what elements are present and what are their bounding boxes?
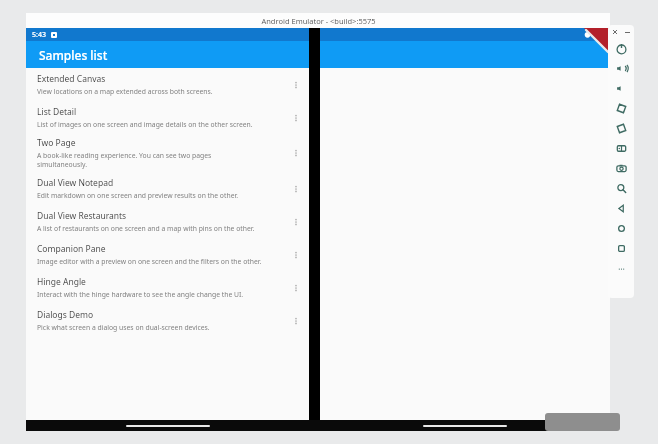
button[interactable]: More options for Two Page xyxy=(287,144,305,162)
button[interactable]: Dual View Notepad xyxy=(26,172,309,205)
staticText: Hinge Angle xyxy=(37,276,86,288)
staticText: A book-like reading experience. You can … xyxy=(37,151,212,169)
staticText: Dialogs Demo xyxy=(37,309,94,321)
staticText: Image editor with a preview on one scree… xyxy=(37,257,262,266)
staticText: Extended Canvas xyxy=(37,73,106,85)
button[interactable]: Fold device xyxy=(608,138,634,158)
button[interactable]: More options for Companion Pane xyxy=(287,246,305,264)
button[interactable]: Camera xyxy=(608,158,634,178)
button[interactable]: Close xyxy=(611,28,619,36)
staticText: List of images on one screen and image d… xyxy=(37,120,253,129)
button[interactable]: More options for Dialogs Demo xyxy=(287,312,305,330)
staticText: Companion Pane xyxy=(37,243,106,255)
button[interactable]: More options for Dual View Restaurants xyxy=(287,213,305,231)
button[interactable]: More options for Dual View Notepad xyxy=(287,180,305,198)
button[interactable]: Back xyxy=(608,198,634,218)
staticText: Pick what screen a dialog uses on dual-s… xyxy=(37,323,210,332)
staticText: Dual View Restaurants xyxy=(37,210,127,222)
staticText: 5:43 xyxy=(32,30,46,40)
staticText: Interact with the hinge hardware to see … xyxy=(37,290,244,299)
button[interactable]: Companion Pane xyxy=(26,238,309,271)
button[interactable]: Hinge Angle xyxy=(26,271,309,304)
button[interactable]: Volume down xyxy=(608,78,634,98)
button[interactable]: Rotate right xyxy=(608,118,634,138)
button[interactable]: Minimize xyxy=(623,28,631,36)
staticText: Samples list xyxy=(39,47,108,63)
staticText: Dual View Notepad xyxy=(37,177,114,189)
button[interactable]: Extended Canvas xyxy=(26,68,309,101)
button[interactable]: Two Page xyxy=(26,134,309,172)
staticText: Android Emulator - <build>:5575 xyxy=(261,16,376,26)
button[interactable]: Home xyxy=(608,218,634,238)
button[interactable]: Overview xyxy=(608,238,634,258)
staticText: A list of restaurants on one screen and … xyxy=(37,224,255,233)
button[interactable]: Volume up xyxy=(608,58,634,78)
button[interactable]: Dialogs Demo xyxy=(26,304,309,337)
button[interactable]: More xyxy=(608,258,634,278)
button[interactable]: Dual View Restaurants xyxy=(26,205,309,238)
button[interactable]: More options for Hinge Angle xyxy=(287,279,305,297)
button[interactable]: More options for Extended Canvas xyxy=(287,76,305,94)
staticText: Edit markdown on one screen and preview … xyxy=(37,191,239,200)
button[interactable]: More options for List Detail xyxy=(287,109,305,127)
staticText: List Detail xyxy=(37,106,77,118)
button[interactable]: Rotate left xyxy=(608,98,634,118)
button[interactable]: List Detail xyxy=(26,101,309,134)
staticText: Two Page xyxy=(37,137,76,149)
staticText: View locations on a map extended across … xyxy=(37,87,213,96)
button[interactable]: Power xyxy=(608,38,634,58)
button[interactable]: Zoom xyxy=(608,178,634,198)
